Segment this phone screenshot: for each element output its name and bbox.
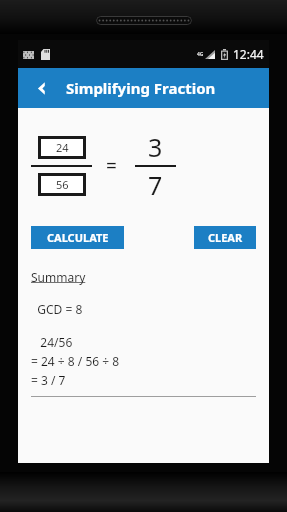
staticText: CLEAR bbox=[208, 230, 243, 245]
staticText: GCD = 8 bbox=[31, 301, 83, 317]
staticText: 24 bbox=[56, 140, 69, 155]
staticText: 4G bbox=[197, 51, 204, 58]
staticText: CALCULATE bbox=[47, 230, 109, 245]
staticText: 56 bbox=[56, 177, 69, 192]
staticText: 12:44 bbox=[233, 46, 264, 62]
button[interactable]: Summary bbox=[31, 269, 86, 285]
staticText: = 3 / 7 bbox=[31, 372, 66, 388]
staticText: = bbox=[106, 153, 117, 179]
button[interactable]: 24 bbox=[41, 139, 83, 156]
staticText: 7 bbox=[148, 168, 163, 202]
button[interactable]: CALCULATE bbox=[31, 226, 124, 249]
staticText: = 24 ÷ 8 / 56 ÷ 8 bbox=[31, 353, 120, 369]
button[interactable]: Back bbox=[26, 73, 56, 103]
staticText: 3 bbox=[148, 130, 163, 164]
button[interactable]: 56 bbox=[41, 176, 83, 193]
staticText: 24/56 bbox=[31, 334, 73, 350]
button[interactable]: CLEAR bbox=[194, 226, 256, 249]
staticText: Simplifying Fraction bbox=[66, 78, 216, 98]
